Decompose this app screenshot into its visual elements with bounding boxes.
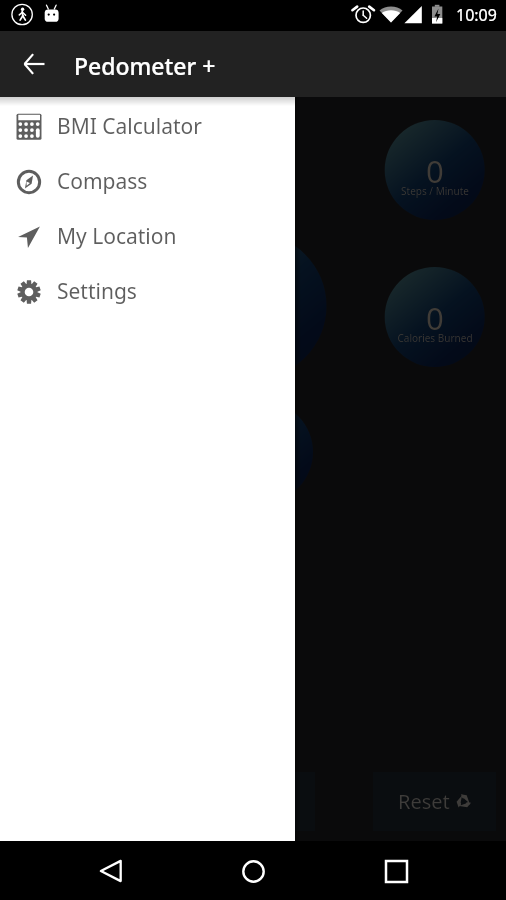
button[interactable]: My Location	[0, 209, 295, 264]
button[interactable]	[200, 772, 315, 831]
staticText: BMI Calculator	[57, 112, 202, 141]
staticText: 0	[426, 150, 444, 192]
button[interactable]: BMI Calculator	[0, 99, 295, 154]
button[interactable]: Compass	[0, 154, 295, 209]
staticText: Settings	[57, 277, 137, 306]
staticText: My Location	[57, 222, 177, 251]
staticText: 10:09	[456, 4, 497, 26]
button[interactable]: Back	[89, 849, 133, 893]
button[interactable]: Home	[231, 849, 275, 893]
button[interactable]: Back	[12, 42, 56, 86]
staticText: Pedometer +	[74, 50, 216, 81]
staticText: Reset	[398, 788, 450, 815]
button[interactable]: Settings	[0, 264, 295, 319]
staticText: Compass	[57, 167, 148, 196]
button[interactable]: Reset	[373, 772, 496, 831]
staticText: 0	[426, 297, 444, 339]
staticText: Steps / Minute	[401, 184, 469, 198]
staticText: Calories Burned	[397, 331, 473, 345]
button[interactable]: Recent apps	[374, 849, 418, 893]
